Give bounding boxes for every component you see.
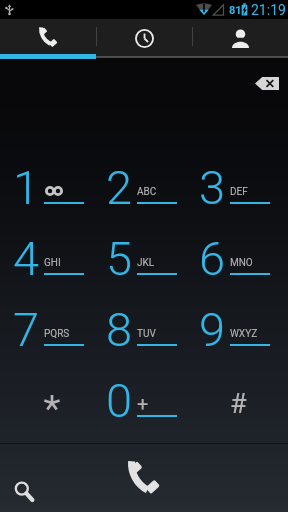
staticText: WXYZ xyxy=(230,328,258,340)
button[interactable]: 3 xyxy=(189,151,282,222)
button[interactable]: # xyxy=(189,364,282,435)
button[interactable]: 9 xyxy=(189,293,282,364)
button[interactable]: Call xyxy=(110,448,178,508)
button[interactable]: 4 xyxy=(3,222,96,293)
button[interactable]: Recents tab xyxy=(97,19,192,54)
staticText: 7 xyxy=(13,302,40,354)
button[interactable]: 2 xyxy=(96,151,189,222)
staticText: PQRS xyxy=(44,328,70,340)
staticText: # xyxy=(230,388,247,418)
button[interactable]: 6 xyxy=(189,222,282,293)
button[interactable]: Contacts tab xyxy=(193,19,288,54)
staticText: MNO xyxy=(230,257,253,269)
staticText: 21:19 xyxy=(251,2,286,18)
staticText: 0 xyxy=(106,373,133,425)
staticText: 6 xyxy=(199,231,226,283)
button[interactable]: 5 xyxy=(96,222,189,293)
staticText: + xyxy=(137,392,149,415)
staticText: ABC xyxy=(137,186,157,198)
button[interactable]: Phone tab xyxy=(0,19,96,54)
staticText: 5 xyxy=(106,231,133,283)
button[interactable]: Backspace xyxy=(247,68,287,98)
staticText: 81 xyxy=(229,4,242,17)
staticText: 8 xyxy=(106,302,133,354)
button[interactable]: 0 xyxy=(96,364,189,435)
staticText: JKL xyxy=(137,257,155,269)
staticText: 3 xyxy=(199,160,226,212)
staticText: 4 xyxy=(13,231,40,283)
staticText: DEF xyxy=(230,186,248,198)
staticText: 1 xyxy=(13,160,40,212)
staticText: TUV xyxy=(137,328,156,340)
button[interactable]: 8 xyxy=(96,293,189,364)
staticText: 2 xyxy=(106,160,133,212)
button[interactable] xyxy=(3,364,96,435)
button[interactable]: 1 xyxy=(3,151,96,222)
button[interactable]: 7 xyxy=(3,293,96,364)
button[interactable]: Search xyxy=(0,469,48,512)
staticText: 9 xyxy=(199,302,226,354)
staticText: GHI xyxy=(44,257,61,269)
